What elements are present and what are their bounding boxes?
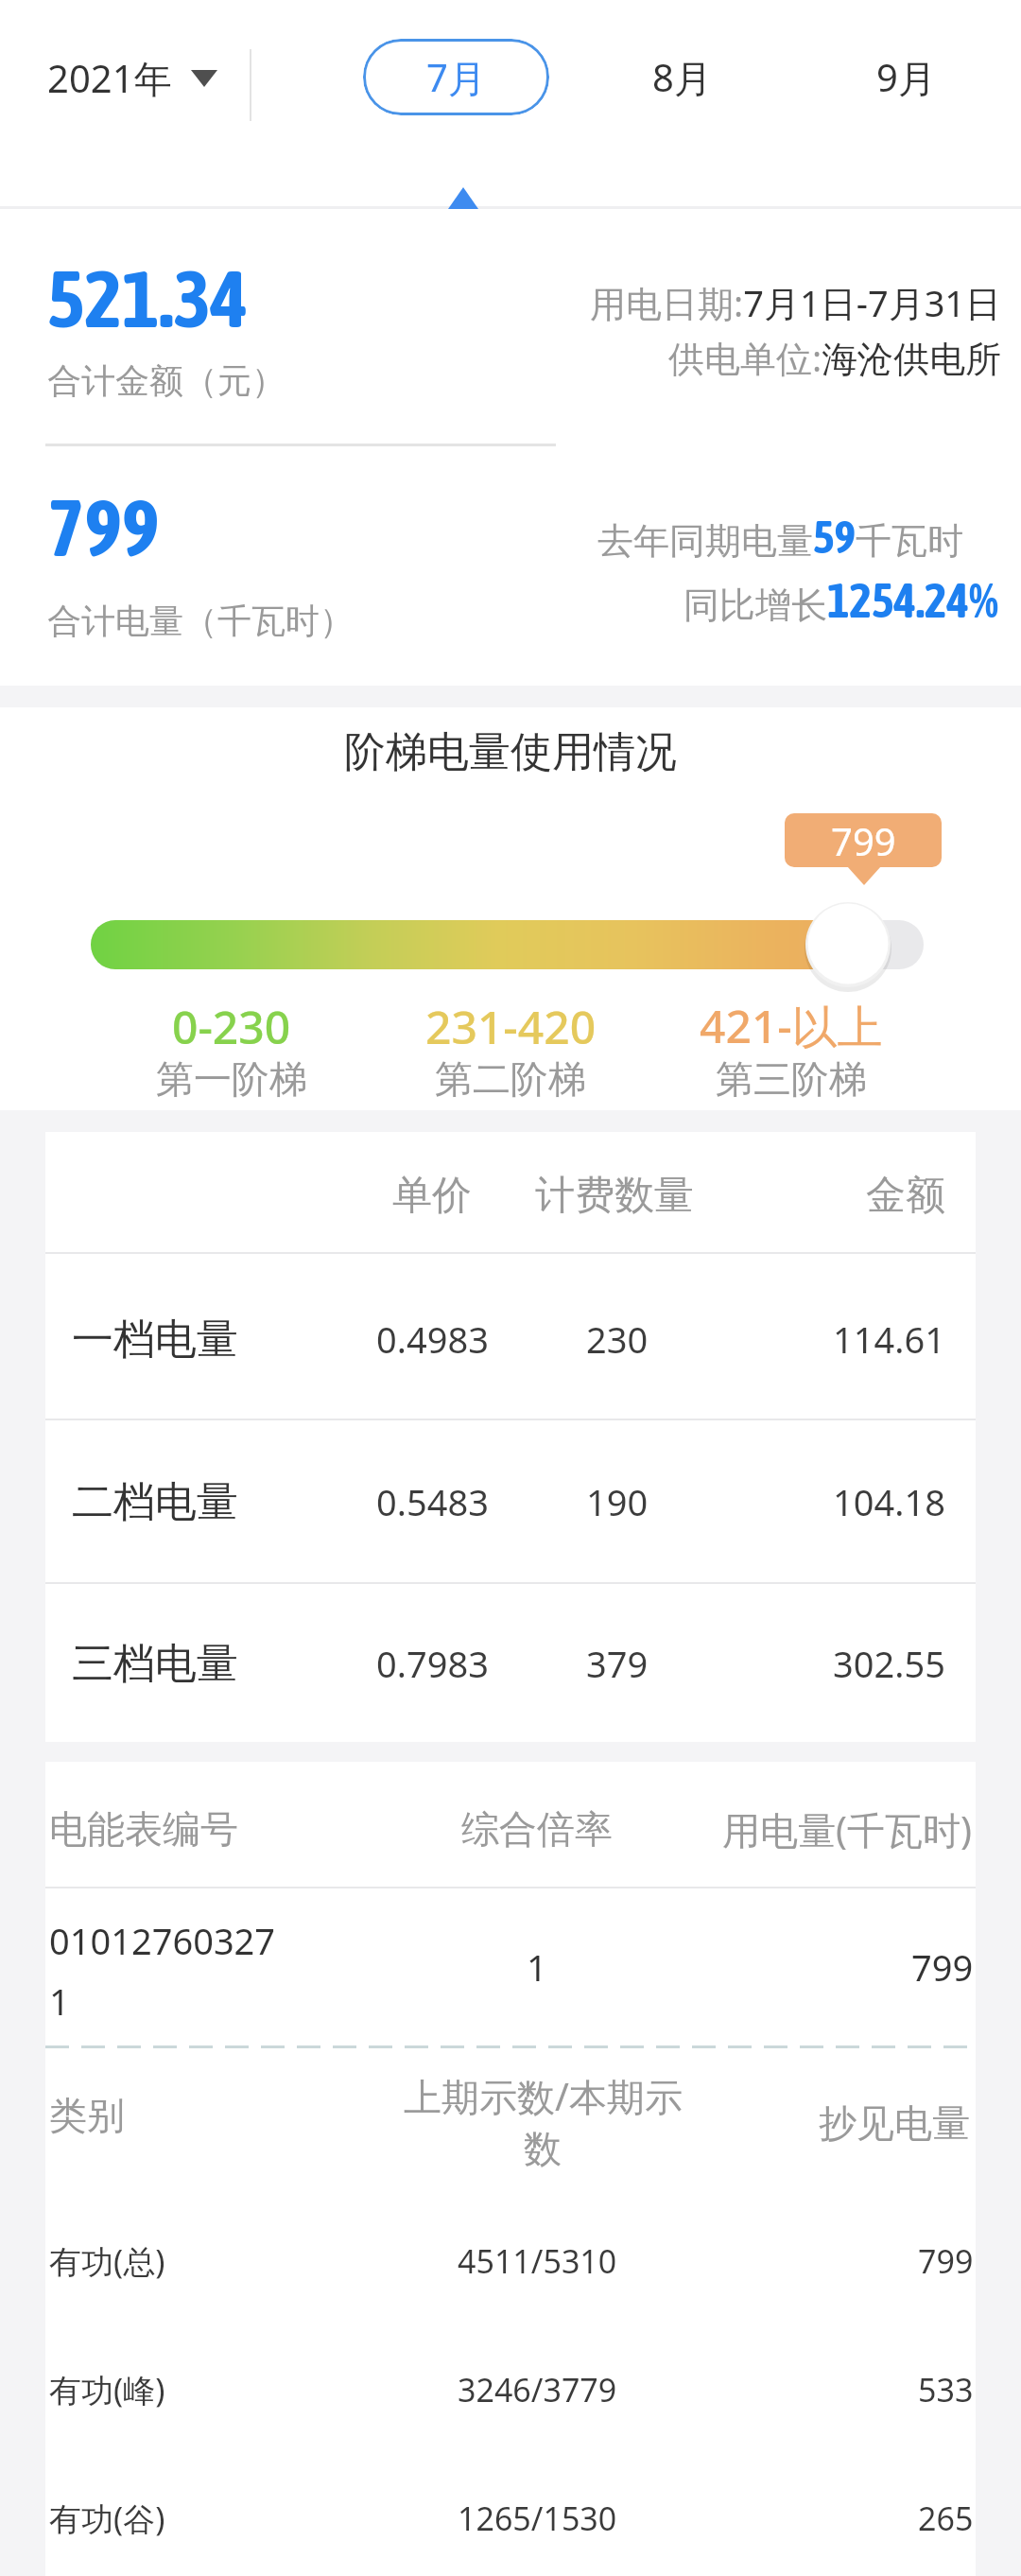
staticText: 230: [586, 1314, 649, 1364]
staticText: 二档电量: [72, 1476, 238, 1528]
button[interactable]: 8月: [615, 39, 748, 115]
button[interactable]: 7月: [363, 39, 549, 115]
staticText: 抄见电量: [819, 2099, 970, 2147]
staticText: 1: [49, 1976, 70, 2026]
staticText: 0.4983: [376, 1314, 489, 1364]
staticText: 一档电量: [72, 1314, 238, 1366]
staticText: 用电量(千瓦时): [722, 1803, 972, 1855]
staticText: 阶梯电量使用情况: [344, 726, 677, 778]
staticText: 金额: [866, 1171, 945, 1221]
staticText: 799: [831, 815, 896, 866]
button[interactable]: 2021年: [47, 36, 217, 119]
button[interactable]: [803, 899, 893, 990]
staticText: 190: [586, 1477, 649, 1526]
staticText: 1265/1530: [458, 2497, 617, 2540]
staticText: 8月: [652, 51, 712, 103]
staticText: 有功(总): [49, 2239, 165, 2283]
staticText: 0.5483: [376, 1477, 489, 1526]
staticText: 三档电量: [72, 1638, 238, 1690]
button[interactable]: [45, 1259, 976, 1419]
staticText: 104.18: [833, 1477, 945, 1526]
staticText: 第三阶梯: [716, 1055, 867, 1103]
staticText: 上期示数/本期示: [404, 2070, 683, 2122]
staticText: 533: [918, 2368, 974, 2411]
staticText: 用电日期:7月1日-7月31日: [590, 278, 1002, 327]
staticText: 231-420: [425, 996, 597, 1057]
staticText: 电能表编号: [49, 1805, 238, 1853]
staticText: 计费数量: [535, 1171, 694, 1221]
staticText: 799: [47, 482, 160, 573]
staticText: 302.55: [833, 1639, 945, 1688]
staticText: 去年同期电量59千瓦时: [597, 511, 964, 564]
staticText: 同比增长1254.24%: [684, 573, 998, 628]
staticText: 265: [918, 2497, 974, 2540]
staticText: 3246/3779: [458, 2368, 617, 2411]
button[interactable]: [45, 1421, 976, 1582]
staticText: 供电单位:海沧供电所: [668, 333, 1002, 382]
button[interactable]: [45, 1583, 976, 1744]
staticText: 有功(谷): [49, 2497, 165, 2540]
staticText: 有功(峰): [49, 2368, 165, 2411]
staticText: 521.34: [47, 253, 249, 344]
staticText: 2021年: [47, 52, 172, 104]
staticText: 数: [524, 2125, 562, 2172]
staticText: 799: [918, 2239, 974, 2283]
staticText: 单价: [392, 1171, 472, 1221]
staticText: 0.7983: [376, 1639, 489, 1688]
staticText: 综合倍率: [461, 1805, 613, 1853]
staticText: 合计金额（元）: [47, 359, 286, 402]
staticText: 9月: [876, 51, 936, 103]
staticText: 合计电量（千瓦时）: [47, 600, 354, 642]
staticText: 421-以上: [700, 995, 883, 1057]
staticText: 0-230: [172, 996, 291, 1057]
staticText: 类别: [49, 2092, 125, 2139]
button[interactable]: 9月: [839, 39, 972, 115]
staticText: 4511/5310: [458, 2239, 617, 2283]
staticText: 第二阶梯: [435, 1055, 586, 1103]
staticText: 799: [911, 1942, 974, 1992]
staticText: 379: [586, 1639, 649, 1688]
staticText: 01012760327: [49, 1916, 276, 1965]
staticText: 第一阶梯: [156, 1055, 307, 1103]
staticText: 114.61: [833, 1314, 945, 1364]
staticText: 1: [527, 1942, 547, 1992]
staticText: 7月: [426, 51, 486, 103]
